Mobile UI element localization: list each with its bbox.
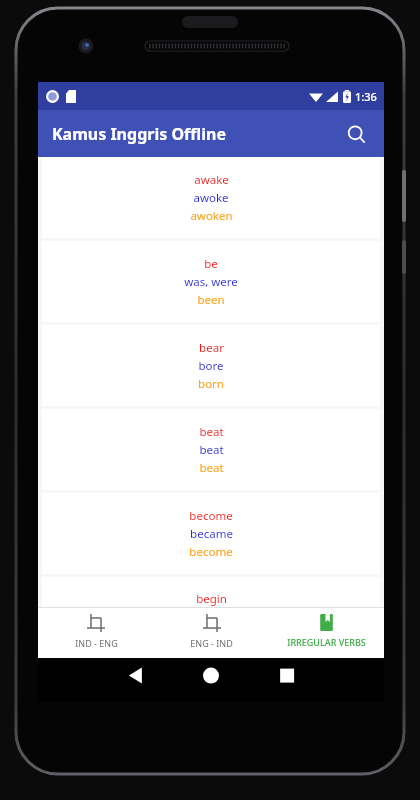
button[interactable]: IND - ENG [38, 608, 154, 658]
staticText: beat [199, 424, 224, 440]
staticText: IRREGULAR VERBS [287, 636, 366, 648]
staticText: became [190, 526, 233, 542]
button[interactable]: awake [42, 157, 380, 238]
button[interactable]: be [42, 241, 380, 322]
staticText: IND - ENG [75, 637, 118, 649]
button[interactable]: ENG - IND [154, 608, 269, 658]
button[interactable]: Search [336, 114, 376, 154]
staticText: be [204, 256, 218, 272]
staticText: become [189, 508, 233, 524]
staticText: awake [194, 172, 229, 188]
button[interactable]: begin [42, 577, 380, 607]
button[interactable]: IRREGULAR VERBS [269, 608, 384, 658]
staticText: become [189, 544, 233, 560]
button[interactable]: bear [42, 325, 380, 406]
staticText: was, were [184, 274, 238, 290]
staticText: bear [199, 340, 224, 356]
staticText: born [198, 376, 224, 392]
button[interactable]: become [42, 493, 380, 574]
staticText: begin [196, 591, 227, 607]
staticText: beat [199, 442, 224, 458]
staticText: ENG - IND [190, 637, 233, 649]
staticText: beat [199, 460, 224, 476]
staticText: 1:36 [355, 89, 377, 104]
button[interactable]: beat [42, 409, 380, 490]
staticText: awoke [193, 190, 229, 206]
staticText: Kamus Inggris Offline [52, 123, 227, 145]
staticText: been [197, 292, 225, 308]
staticText: awoken [190, 208, 233, 224]
staticText: bore [198, 358, 224, 374]
